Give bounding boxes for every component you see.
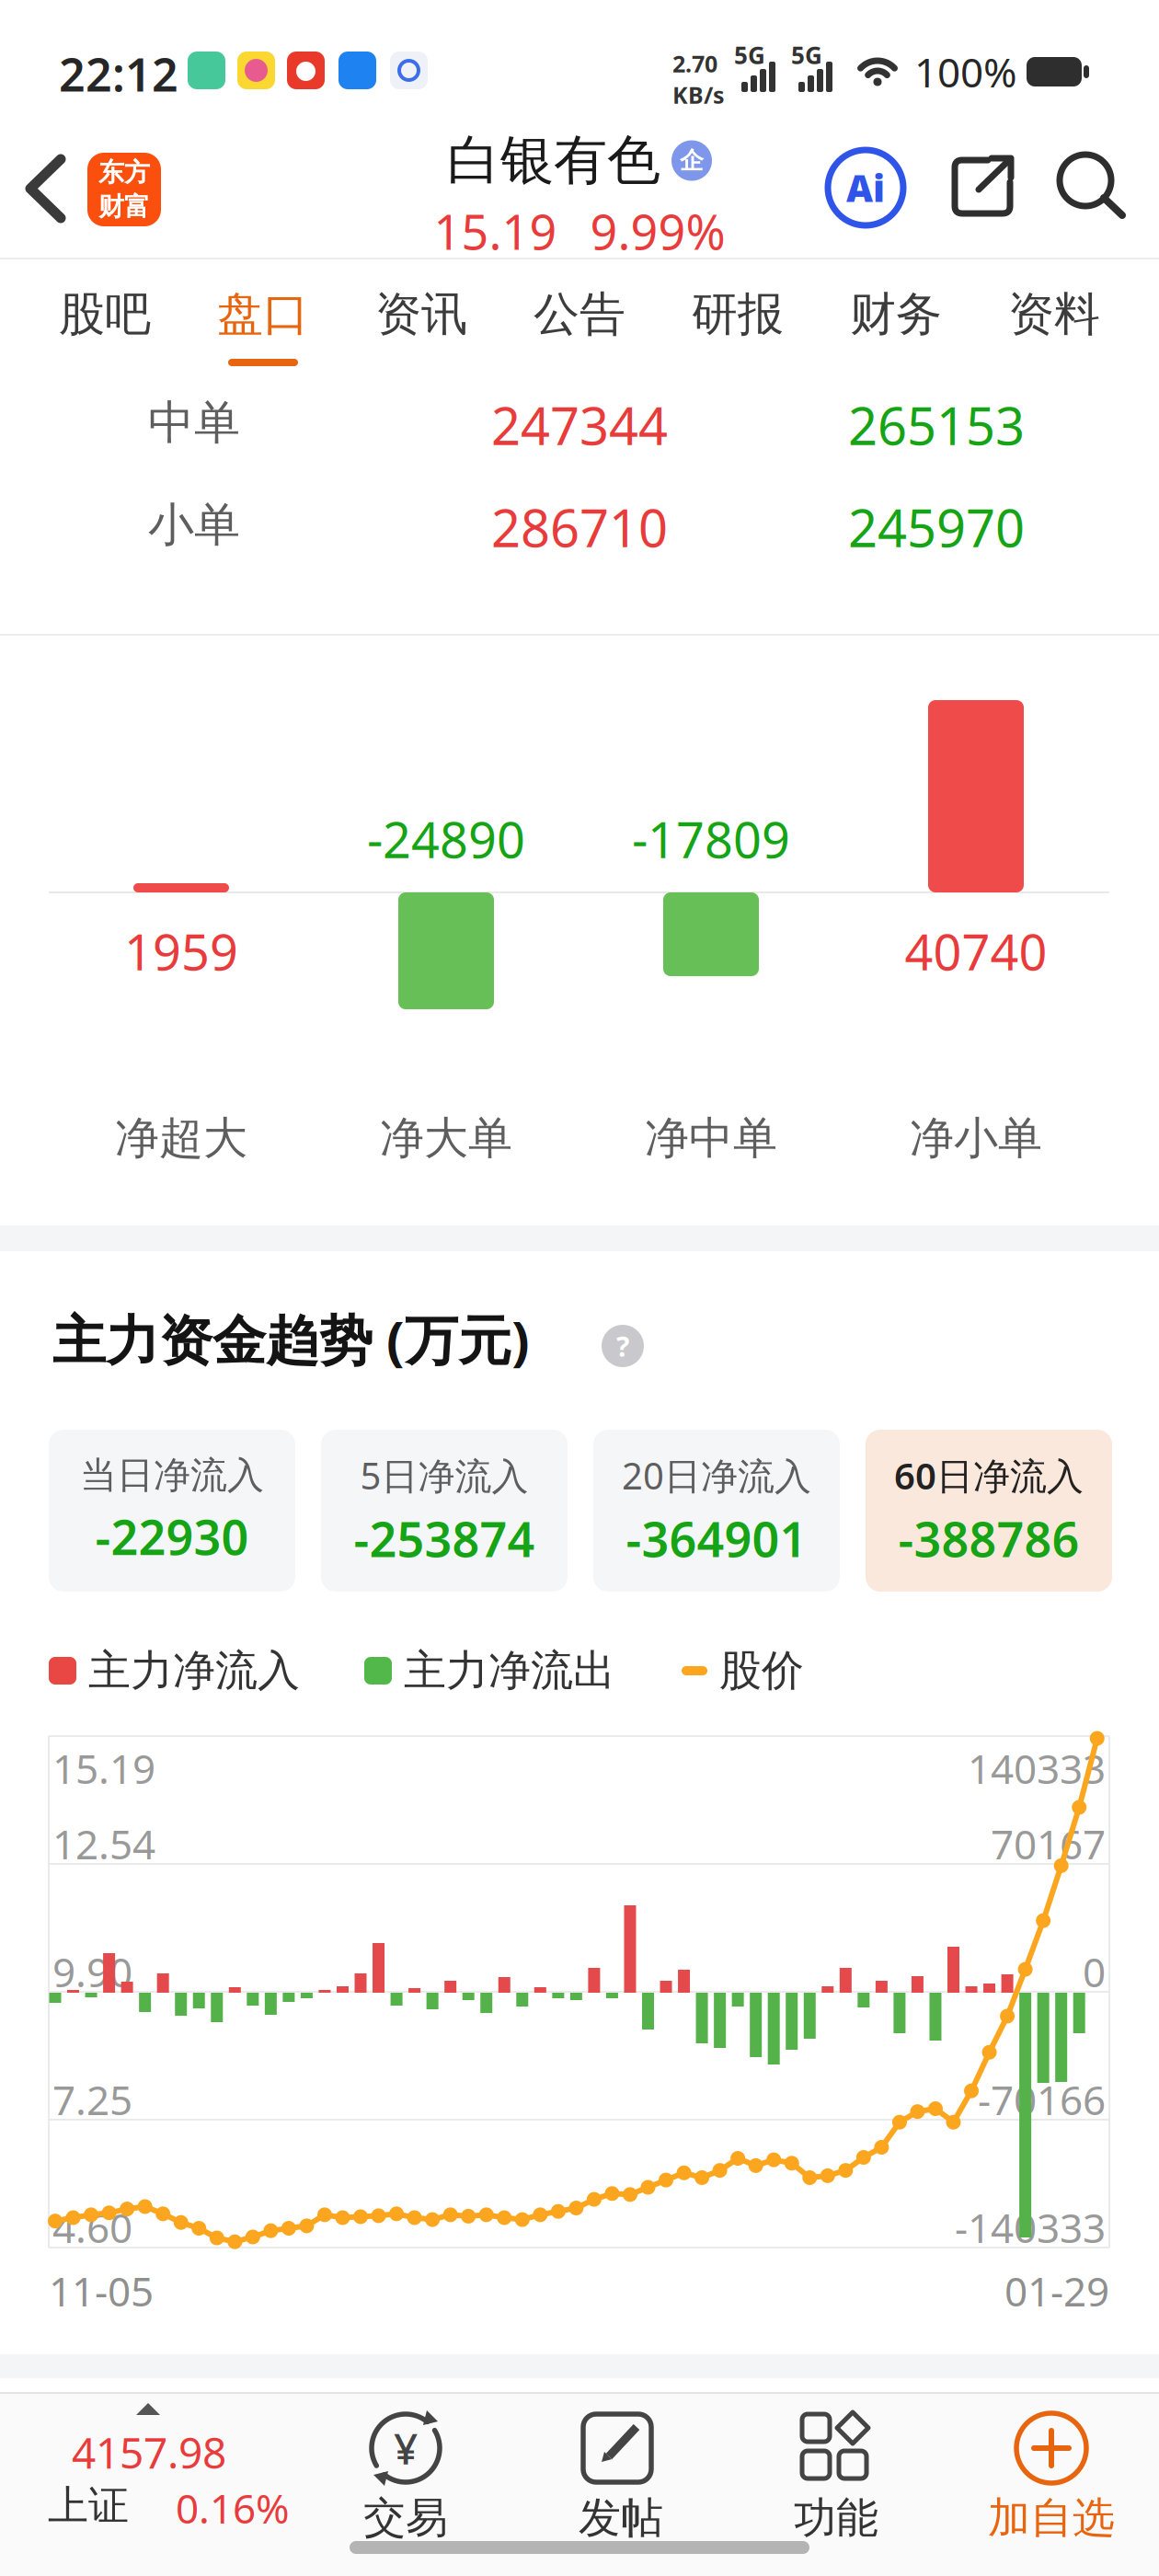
staticText: 股价: [719, 1644, 804, 1697]
button[interactable]: 资料: [999, 285, 1109, 343]
staticText: ?: [616, 1327, 629, 1365]
button[interactable]: 公告: [524, 285, 635, 343]
staticText: 15.19: [434, 199, 557, 264]
button[interactable]: 帮助: [602, 1325, 644, 1367]
staticText: 12.54: [52, 1816, 155, 1871]
staticText: -364901: [626, 1506, 807, 1571]
staticText: 上证: [48, 2480, 129, 2531]
staticText: 245970: [848, 492, 1025, 562]
staticText: 财务: [850, 285, 942, 343]
staticText: 100%: [914, 44, 1017, 99]
staticText: -17809: [632, 805, 790, 873]
staticText: -24890: [367, 805, 525, 873]
button[interactable]: ¥: [298, 2392, 513, 2576]
staticText: 白银有色: [447, 127, 660, 194]
button[interactable]: 股吧: [50, 285, 160, 343]
staticText: 净小单: [910, 1110, 1042, 1166]
button[interactable]: 搜索: [1060, 155, 1126, 219]
staticText: 9.99%: [590, 199, 725, 264]
button[interactable]: 盘口: [208, 285, 318, 343]
staticText: 发帖: [579, 2491, 663, 2545]
staticText: 企: [680, 146, 704, 176]
staticText: 净中单: [645, 1110, 777, 1166]
staticText: 加自选: [988, 2491, 1115, 2545]
button[interactable]: 60日净流入: [866, 1430, 1112, 1592]
staticText: 265153: [848, 390, 1025, 460]
staticText: 1959: [124, 917, 238, 985]
button[interactable]: 财务: [841, 285, 951, 343]
staticText: 主力净流出: [404, 1644, 615, 1697]
button[interactable]: 20日净流入: [593, 1430, 840, 1592]
button[interactable]: 当日净流入: [49, 1430, 295, 1592]
staticText: 主力资金趋势 (万元): [52, 1303, 530, 1375]
button[interactable]: Back: [24, 155, 68, 223]
button[interactable]: 分享: [951, 156, 1014, 217]
button[interactable]: 功能: [729, 2392, 944, 2576]
staticText: KB/s: [672, 79, 725, 110]
staticText: 股吧: [59, 285, 151, 343]
staticText: 15.19: [52, 1741, 155, 1796]
staticText: 净超大: [115, 1110, 247, 1166]
staticText: -22930: [95, 1504, 249, 1569]
staticText: 60日净流入: [894, 1450, 1084, 1500]
staticText: 盘口: [217, 285, 309, 343]
staticText: 247344: [491, 390, 668, 460]
staticText: 0: [1083, 1944, 1106, 1999]
staticText: 5日净流入: [360, 1450, 528, 1500]
staticText: 净大单: [380, 1110, 512, 1166]
button[interactable]: 发帖: [513, 2392, 729, 2576]
staticText: 资讯: [375, 285, 467, 343]
button[interactable]: 5日净流入: [321, 1430, 568, 1592]
staticText: 20日净流入: [622, 1450, 811, 1500]
staticText: 资料: [1008, 285, 1100, 343]
staticText: 22:12: [59, 42, 178, 105]
staticText: 4157.98: [72, 2423, 226, 2481]
button[interactable]: 4157.98: [0, 2392, 298, 2576]
staticText: 研报: [692, 285, 784, 343]
staticText: 286710: [491, 492, 668, 562]
staticText: 70167: [991, 1816, 1106, 1871]
staticText: 交易: [363, 2491, 448, 2545]
staticText: -388786: [898, 1506, 1079, 1571]
staticText: 4.60: [52, 2200, 132, 2255]
staticText: 9.90: [52, 1944, 132, 1999]
staticText: 主力净流入: [88, 1644, 300, 1697]
staticText: -70166: [978, 2072, 1106, 2127]
staticText: 5G: [791, 39, 822, 71]
staticText: 2.70: [672, 48, 717, 79]
staticText: 公告: [534, 285, 625, 343]
button[interactable]: 加自选: [944, 2392, 1159, 2576]
button[interactable]: 东方财富: [87, 153, 161, 226]
staticText: 7.25: [52, 2072, 132, 2127]
staticText: 01-29: [1004, 2263, 1109, 2318]
staticText: 中单: [148, 394, 240, 452]
staticText: 功能: [794, 2491, 878, 2545]
button[interactable]: 研报: [683, 285, 793, 343]
staticText: 40740: [905, 917, 1047, 985]
staticText: 0.16%: [176, 2480, 290, 2535]
button[interactable]: AI助手: [828, 150, 903, 225]
staticText: Ai: [846, 163, 885, 213]
staticText: 11-05: [49, 2263, 154, 2318]
staticText: -140333: [955, 2200, 1106, 2255]
staticText: 140333: [968, 1741, 1106, 1796]
staticText: 5G: [734, 39, 765, 71]
button[interactable]: 资讯: [366, 285, 476, 343]
staticText: 东方: [98, 156, 150, 189]
staticText: 当日净流入: [80, 1452, 264, 1498]
staticText: ¥: [394, 2419, 418, 2477]
staticText: -253874: [354, 1506, 535, 1571]
staticText: 小单: [148, 496, 240, 554]
staticText: 财富: [98, 190, 150, 223]
